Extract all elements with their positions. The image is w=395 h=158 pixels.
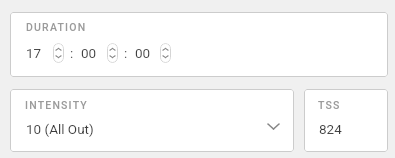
staticText: 10 (All Out) <box>26 121 94 137</box>
staticText: : <box>70 45 74 61</box>
button[interactable]: Increase or decrease value <box>107 43 118 63</box>
staticText: 00 <box>81 45 97 61</box>
staticText: 17 <box>26 45 42 61</box>
other: Open intensity picker <box>268 124 279 129</box>
staticText: TSS <box>318 99 341 111</box>
staticText: 00 <box>135 45 151 61</box>
button[interactable]: INTENSITY <box>10 89 294 152</box>
staticText: 824 <box>319 121 342 137</box>
staticText: : <box>124 45 128 61</box>
button[interactable]: Increase or decrease value <box>160 43 171 63</box>
staticText: DURATION <box>26 21 87 33</box>
staticText: INTENSITY <box>25 99 88 111</box>
button[interactable]: Increase or decrease value <box>53 43 64 63</box>
